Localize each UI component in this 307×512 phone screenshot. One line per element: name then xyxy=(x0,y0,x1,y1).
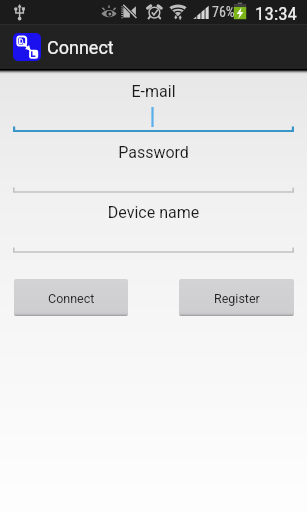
button[interactable]: Register xyxy=(179,279,294,316)
button[interactable]: Connect xyxy=(14,279,128,316)
staticText: Connect xyxy=(47,37,114,58)
staticText: 76% xyxy=(212,4,235,20)
staticText: Register xyxy=(214,291,260,306)
staticText: E-mail xyxy=(13,82,294,101)
staticText: Password xyxy=(13,143,294,162)
staticText: 13:34 xyxy=(255,2,297,24)
staticText: Device name xyxy=(13,203,294,222)
staticText: Connect xyxy=(48,291,95,306)
